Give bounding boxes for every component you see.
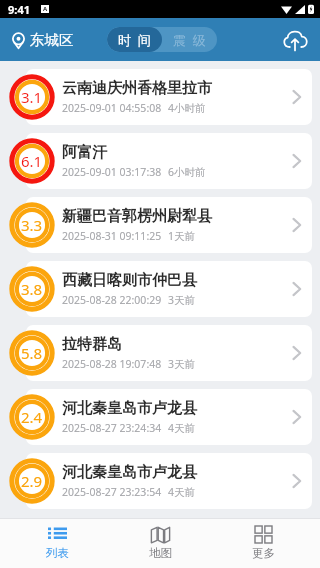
button[interactable]: 河北秦皇岛市卢龙县 [26, 389, 312, 445]
button[interactable]: 时 间 [107, 27, 162, 52]
staticText: 4天前 [168, 421, 196, 435]
staticText: 拉特群岛 [62, 335, 122, 354]
staticText: 2.9 [21, 471, 43, 491]
button[interactable]: 更多 [217, 518, 309, 568]
staticText: 阿富汗 [62, 143, 107, 162]
staticText: 地图 [149, 546, 172, 560]
staticText: 2025-08-27 23:24:34 [62, 421, 162, 435]
staticText: 2025-08-28 19:07:48 [62, 357, 162, 371]
staticText: 1天前 [168, 229, 196, 243]
button[interactable]: Upload [278, 23, 312, 57]
staticText: 云南迪庆州香格里拉市 [62, 79, 212, 98]
staticText: 3.3 [21, 215, 43, 235]
staticText: 4小时前 [168, 101, 206, 115]
staticText: 2025-08-28 22:00:29 [62, 293, 162, 307]
staticText: 9:41 [8, 2, 30, 17]
staticText: 3.1 [21, 87, 43, 107]
button[interactable]: 列表 [11, 518, 103, 568]
staticText: 更多 [252, 546, 275, 560]
button[interactable]: 拉特群岛 [26, 325, 312, 381]
button[interactable]: 河北秦皇岛市卢龙县 [26, 453, 312, 509]
staticText: 2025-08-31 09:11:25 [62, 229, 162, 243]
staticText: 3天前 [168, 293, 196, 307]
button[interactable]: 震 级 [162, 27, 217, 52]
staticText: 河北秦皇岛市卢龙县 [62, 399, 197, 418]
button[interactable]: 东城区 [0, 27, 80, 53]
staticText: 新疆巴音郭楞州尉犁县 [62, 207, 212, 226]
button[interactable]: 云南迪庆州香格里拉市 [26, 69, 312, 125]
button[interactable]: 地图 [114, 518, 206, 568]
staticText: 2025-09-01 04:55:08 [62, 101, 162, 115]
staticText: 6小时前 [168, 165, 206, 179]
staticText: 6.1 [21, 151, 43, 171]
button[interactable]: 阿富汗 [26, 133, 312, 189]
button[interactable]: 新疆巴音郭楞州尉犁县 [26, 197, 312, 253]
staticText: 河北秦皇岛市卢龙县 [62, 463, 197, 482]
button[interactable]: 西藏日喀则市仲巴县 [26, 261, 312, 317]
staticText: 西藏日喀则市仲巴县 [62, 271, 197, 290]
staticText: 列表 [46, 546, 69, 560]
staticText: 2025-09-01 03:17:38 [62, 165, 162, 179]
staticText: 震 级 [173, 31, 206, 49]
staticText: 4天前 [168, 485, 196, 499]
staticText: 5.8 [21, 343, 43, 363]
staticText: 3.8 [21, 279, 43, 299]
staticText: 东城区 [30, 31, 74, 49]
staticText: 3天前 [168, 357, 196, 371]
staticText: A [43, 5, 48, 13]
staticText: 2025-08-27 23:23:54 [62, 485, 162, 499]
staticText: 时 间 [118, 31, 151, 49]
staticText: 2.4 [21, 407, 43, 427]
